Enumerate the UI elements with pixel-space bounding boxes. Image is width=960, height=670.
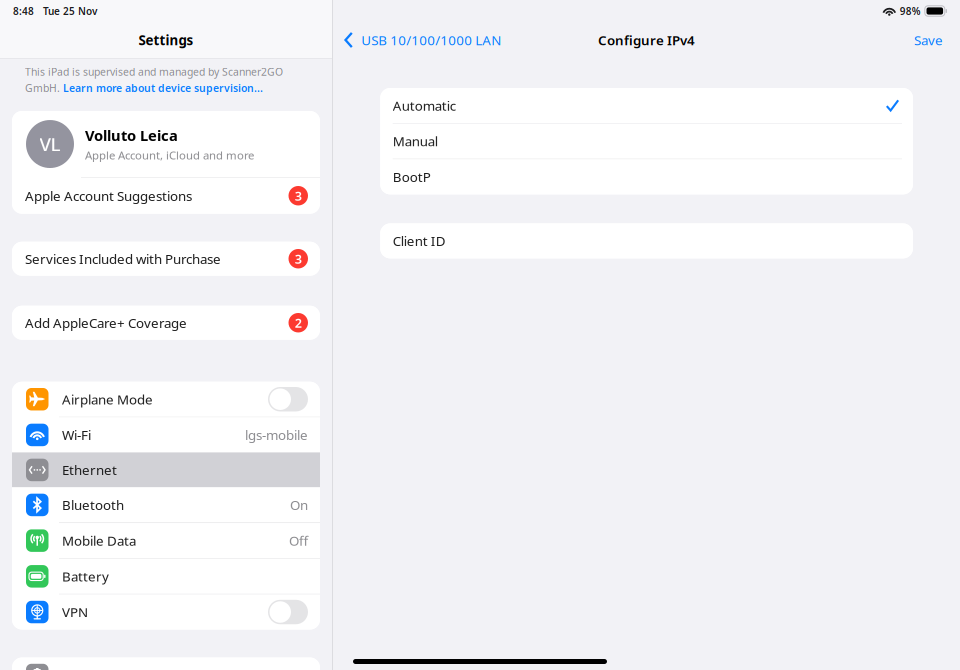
button[interactable]: General	[12, 657, 320, 670]
button[interactable]: Add AppleCare+ Coverage	[12, 306, 320, 340]
staticText: GmbH.	[25, 81, 63, 95]
staticText: Mobile Data	[62, 531, 136, 550]
button[interactable]: Services Included with Purchase	[12, 242, 320, 276]
button[interactable]: USB 10/100/1000 LAN	[344, 31, 501, 49]
button[interactable]: Airplane Mode	[12, 382, 320, 417]
staticText: 8:48	[13, 4, 34, 18]
staticText: USB 10/100/1000 LAN	[361, 31, 501, 49]
button[interactable]: Wi-Fi	[12, 417, 320, 452]
staticText: Settings	[138, 31, 193, 49]
staticText: 98%	[900, 4, 921, 18]
staticText: Off	[289, 531, 308, 550]
staticText: Client ID	[393, 232, 446, 250]
button[interactable]: VPN	[12, 594, 320, 629]
staticText: Volluto Leica	[85, 125, 178, 145]
staticText: Automatic	[393, 96, 456, 115]
staticText: Ethernet	[62, 461, 117, 479]
staticText: VPN	[62, 603, 88, 621]
staticText: 3	[295, 187, 302, 204]
button[interactable]: Save	[914, 31, 943, 49]
staticText: 2	[295, 314, 302, 331]
button[interactable]: Battery	[12, 559, 320, 594]
staticText: Services Included with Purchase	[25, 250, 221, 268]
staticText: This iPad is supervised and managed by S…	[25, 65, 283, 79]
staticText: Tue 25 Nov	[43, 4, 97, 18]
button[interactable]: Automatic	[380, 88, 913, 123]
button[interactable]: Apple Account Suggestions	[12, 178, 320, 214]
staticText: Add AppleCare+ Coverage	[25, 314, 187, 332]
staticText: Manual	[393, 132, 438, 150]
staticText: Save	[914, 31, 943, 49]
staticText: Wi-Fi	[62, 426, 91, 444]
staticText: Battery	[62, 567, 109, 585]
button[interactable]: Manual	[380, 124, 913, 159]
button[interactable]: Bluetooth	[12, 487, 320, 522]
staticText: 3	[295, 250, 302, 267]
staticText: Bluetooth	[62, 496, 124, 514]
staticText: BootP	[393, 168, 431, 186]
staticText: Apple Account, iCloud and more	[85, 147, 254, 163]
staticText: VL	[39, 131, 60, 157]
button[interactable]: VL	[12, 111, 320, 177]
staticText: Airplane Mode	[62, 390, 153, 408]
button[interactable]: Client ID	[380, 223, 913, 258]
staticText: Configure IPv4	[598, 31, 695, 49]
staticText: Learn more about device supervision...	[63, 81, 263, 95]
button[interactable]: Learn more about device supervision...	[63, 81, 263, 95]
button[interactable]: Ethernet	[12, 452, 320, 487]
staticText: lgs-mobile	[245, 426, 308, 444]
button[interactable]: Mobile Data	[12, 523, 320, 558]
staticText: On	[290, 496, 308, 514]
button[interactable]: BootP	[380, 159, 913, 194]
staticText: Apple Account Suggestions	[25, 187, 192, 205]
